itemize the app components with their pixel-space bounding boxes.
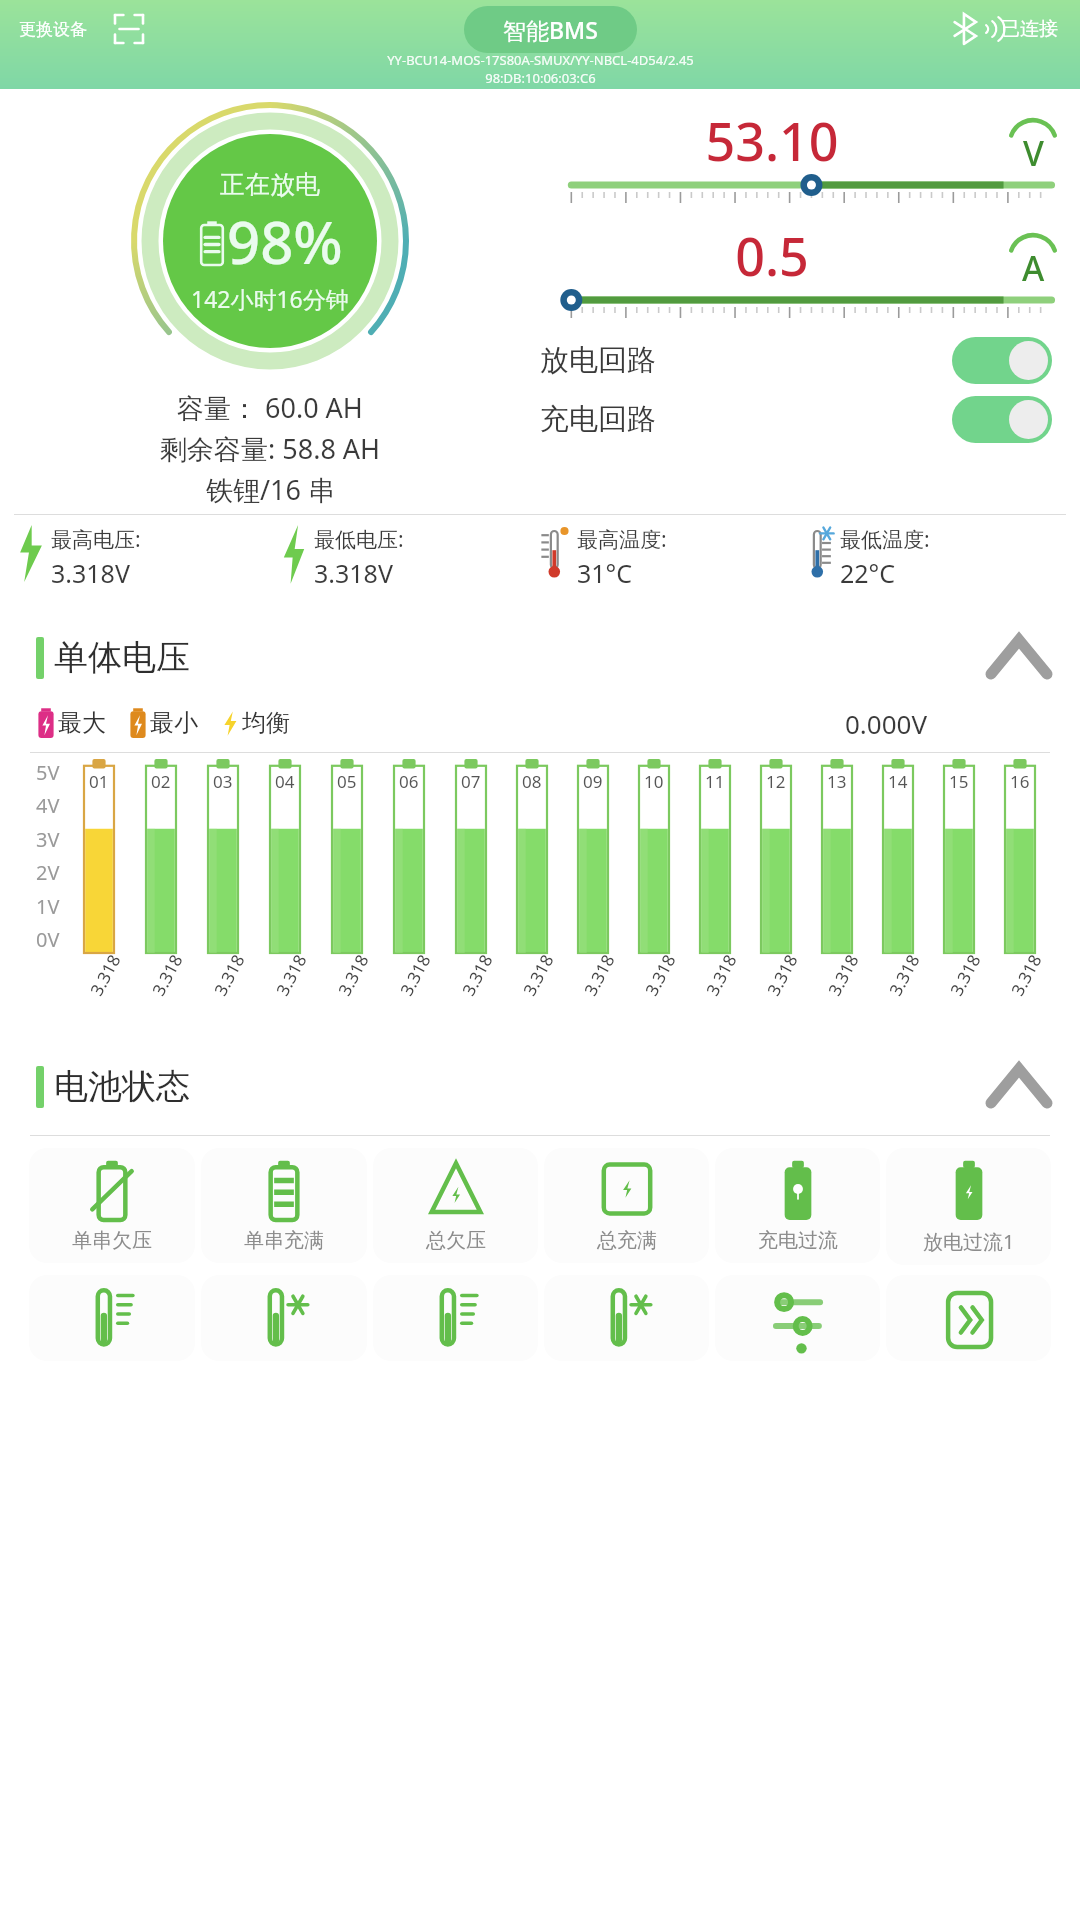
staticText: 3.318 [640, 950, 681, 1000]
staticText: 铁锂/16 串 [206, 471, 335, 508]
staticText: 3.318 [701, 950, 742, 1000]
staticText: 4V [36, 792, 60, 819]
staticText: 电池状态 [54, 1065, 190, 1108]
button[interactable] [544, 1275, 709, 1361]
staticText: A [1022, 245, 1045, 291]
staticText: 0V [36, 926, 60, 953]
staticText: 最低电压: [314, 525, 404, 554]
staticText: 单串欠压 [72, 1228, 152, 1253]
button[interactable]: 已连接 [952, 14, 1080, 44]
button[interactable]: 放电回路 [540, 337, 1062, 384]
staticText: 16 [1010, 770, 1030, 793]
staticText: 01 [89, 770, 109, 793]
staticText: 最低温度: [840, 525, 930, 554]
staticText: 2V [36, 859, 60, 886]
staticText: 02 [151, 770, 171, 793]
staticText: 最高温度: [577, 525, 667, 554]
staticText: 3.318 [147, 950, 188, 1000]
staticText: 15 [949, 770, 969, 793]
staticText: 04 [275, 770, 295, 793]
staticText: 98:DB:10:06:03:C6 [485, 69, 596, 87]
staticText: 最小 [150, 708, 198, 738]
staticText: 最大 [58, 708, 106, 738]
staticText: 0.000V [845, 706, 928, 741]
staticText: YY-BCU14-MOS-17S80A-SMUX/YY-NBCL-4D54/2.… [387, 51, 694, 69]
button[interactable]: 折叠 [980, 1047, 1058, 1125]
staticText: 3.318 [271, 950, 312, 1000]
staticText: 总欠压 [426, 1228, 486, 1253]
button[interactable] [886, 1275, 1051, 1361]
button[interactable] [715, 1275, 880, 1361]
staticText: 剩余容量: 58.8 AH [160, 430, 381, 467]
staticText: 最高电压: [51, 525, 141, 554]
button[interactable]: 充电回路 [540, 396, 1062, 443]
staticText: 正在放电 [220, 169, 320, 200]
button[interactable]: 智能BMS [464, 6, 637, 53]
button[interactable]: 总充满 [544, 1148, 709, 1263]
staticText: 22°C [840, 556, 896, 590]
button[interactable]: 均衡 [212, 704, 298, 742]
button[interactable]: 扫描 [109, 9, 149, 49]
staticText: V [1023, 130, 1044, 176]
button[interactable]: 单串充满 [201, 1148, 367, 1263]
staticText: 98% [227, 202, 343, 281]
button[interactable]: 更换设备 [0, 19, 87, 40]
staticText: 3.318 [395, 950, 436, 1000]
staticText: 3.318V [51, 556, 130, 590]
staticText: 14 [888, 770, 908, 793]
staticText: 09 [583, 770, 603, 793]
staticText: 单体电压 [54, 636, 190, 679]
staticText: 08 [522, 770, 542, 793]
staticText: 10 [644, 770, 664, 793]
staticText: 11 [705, 770, 725, 793]
staticText: 3.318 [762, 950, 803, 1000]
staticText: 06 [399, 770, 419, 793]
staticText: 充电过流 [758, 1228, 838, 1253]
staticText: 3.318 [457, 950, 498, 1000]
button[interactable] [201, 1275, 367, 1361]
staticText: 31°C [577, 556, 633, 590]
staticText: 总充满 [597, 1228, 657, 1253]
staticText: 5V [36, 759, 60, 786]
staticText: 142小时16分钟 [191, 283, 349, 314]
staticText: 03 [213, 770, 233, 793]
staticText: 53.10 [540, 105, 1004, 176]
staticText: 3.318V [314, 556, 393, 590]
button[interactable]: 单串欠压 [29, 1148, 195, 1263]
staticText: 07 [461, 770, 481, 793]
staticText: 3.318 [884, 950, 925, 1000]
staticText: 3.318 [945, 950, 986, 1000]
button[interactable]: 折叠 [980, 618, 1058, 696]
staticText: 3V [36, 826, 60, 853]
staticText: 单串充满 [244, 1228, 324, 1253]
button[interactable]: 最小 [120, 704, 206, 742]
staticText: 放电回路 [540, 342, 656, 379]
staticText: 放电过流1 [923, 1228, 1015, 1255]
button[interactable]: 放电过流1 [886, 1148, 1051, 1265]
staticText: 充电回路 [540, 401, 656, 438]
staticText: 3.318 [85, 950, 126, 1000]
staticText: 3.318 [823, 950, 864, 1000]
staticText: 3.318 [209, 950, 250, 1000]
button[interactable] [29, 1275, 195, 1361]
staticText: 均衡 [242, 708, 290, 738]
staticText: 05 [337, 770, 357, 793]
staticText: 1V [36, 893, 60, 920]
staticText: 3.318 [1006, 950, 1047, 1000]
staticText: 3.318 [518, 950, 559, 1000]
staticText: 3.318 [579, 950, 620, 1000]
staticText: 13 [827, 770, 847, 793]
staticText: 12 [766, 770, 786, 793]
button[interactable]: 总欠压 [373, 1148, 538, 1263]
staticText: 3.318 [333, 950, 374, 1000]
button[interactable] [373, 1275, 538, 1361]
button[interactable]: 充电过流 [715, 1148, 880, 1263]
staticText: 智能BMS [503, 14, 598, 45]
staticText: 0.5 [540, 220, 1004, 291]
staticText: 已连接 [1001, 17, 1058, 41]
staticText: 容量： 60.0 AH [177, 389, 363, 426]
button[interactable]: 最大 [28, 704, 114, 742]
